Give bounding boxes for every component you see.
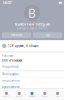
staticText: Ещё [45, 33, 49, 37]
button[interactable]: 128 друзей, 4 общих [0, 40, 64, 51]
staticText: Музыка [42, 95, 48, 97]
button[interactable]: Новости [0, 89, 13, 100]
button[interactable]: Музыка [38, 89, 51, 100]
button[interactable]: Ещё [51, 89, 64, 100]
button[interactable]: Аудиозаписи [0, 84, 64, 90]
button[interactable]: Профиль [26, 89, 38, 100]
button[interactable]: Ещё [33, 32, 62, 38]
staticText: Новости [3, 95, 10, 97]
staticText: Валентин Петров [14, 21, 49, 27]
staticText: Ещё [56, 95, 59, 97]
staticText: Фотографии [2, 72, 19, 76]
button[interactable]: Подробнее [2, 65, 18, 68]
button[interactable]: Фотографии [0, 71, 64, 77]
button[interactable]: Написать [2, 32, 31, 38]
staticText: Друзья [16, 95, 22, 97]
button[interactable]: Друзья [13, 89, 26, 100]
staticText: Аудиозаписи [2, 85, 20, 89]
staticText: Видеозаписи [2, 79, 20, 82]
staticText: ООО «Ромашка» [2, 59, 22, 62]
staticText: B [28, 5, 36, 21]
staticText: был(а) в сети в 14:07 [16, 27, 47, 30]
button[interactable]: Видеозаписи [0, 78, 64, 84]
staticText: ▮▮▮ [58, 1, 61, 4]
staticText: Подробнее [2, 65, 18, 68]
staticText: Работает [2, 54, 13, 58]
staticText: 128 друзей, 4 общих [8, 44, 38, 48]
staticText: Написать [11, 33, 22, 37]
staticText: 14:07 [2, 0, 11, 5]
staticText: Профиль [28, 95, 35, 97]
